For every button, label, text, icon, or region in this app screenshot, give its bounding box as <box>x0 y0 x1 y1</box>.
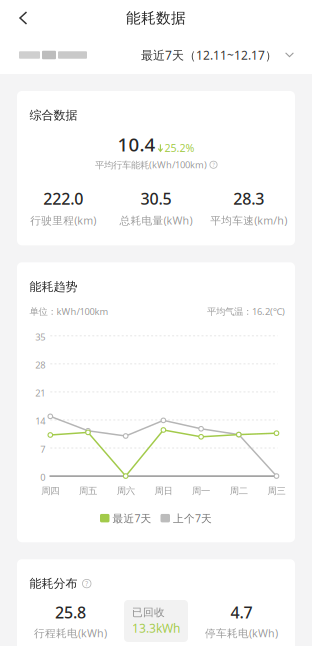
staticText: 0 <box>40 471 45 483</box>
staticText: 平均行车能耗(kWh/100km) <box>95 158 207 171</box>
staticText: 总耗电量(kWh) <box>119 213 192 227</box>
staticText: 222.0 <box>43 188 83 209</box>
staticText: 21 <box>35 387 45 399</box>
staticText: 25.8 <box>55 602 86 623</box>
staticText: 综合数据 <box>29 108 77 123</box>
staticText: 4.7 <box>230 602 252 623</box>
staticText: 周三 <box>267 485 285 497</box>
staticText: 35 <box>35 331 45 343</box>
staticText: 10.4 <box>117 132 155 156</box>
staticText: 行驶里程(km) <box>30 213 96 227</box>
button[interactable]: 最近7天（12.11~12.17） <box>141 47 294 63</box>
staticText: 周日 <box>154 485 172 497</box>
staticText: ? <box>85 579 88 588</box>
staticText: 上个7天 <box>173 511 212 525</box>
staticText: 30.5 <box>140 188 171 209</box>
staticText: 周一 <box>192 485 210 497</box>
staticText: 13.3kWh <box>132 620 180 636</box>
staticText: 单位：kWh/100km <box>29 305 108 317</box>
staticText: 能耗趋势 <box>29 279 77 294</box>
staticText: 能耗数据 <box>126 9 186 27</box>
staticText: 28 <box>35 359 45 371</box>
staticText: 25.2% <box>164 141 194 155</box>
staticText: 周五 <box>79 485 97 497</box>
staticText: 周四 <box>41 485 59 497</box>
staticText: 已回收 <box>132 606 165 619</box>
staticText: 周六 <box>117 485 135 497</box>
staticText: 平均气温：16.2(℃) <box>207 305 285 317</box>
button[interactable]: 返回 <box>0 1 44 35</box>
staticText: 最近7天 <box>112 511 151 525</box>
staticText: ? <box>212 161 214 168</box>
staticText: 平均车速(km/h) <box>210 213 287 227</box>
staticText: 停车耗电(kWh) <box>205 626 278 640</box>
staticText: 14 <box>35 415 45 427</box>
staticText: 最近7天（12.11~12.17） <box>141 47 277 63</box>
staticText: 能耗分布 <box>29 576 77 591</box>
staticText: 行程耗电(kWh) <box>34 626 107 640</box>
staticText: 28.3 <box>233 188 264 209</box>
staticText: 7 <box>40 443 45 455</box>
staticText: 周二 <box>230 485 248 497</box>
